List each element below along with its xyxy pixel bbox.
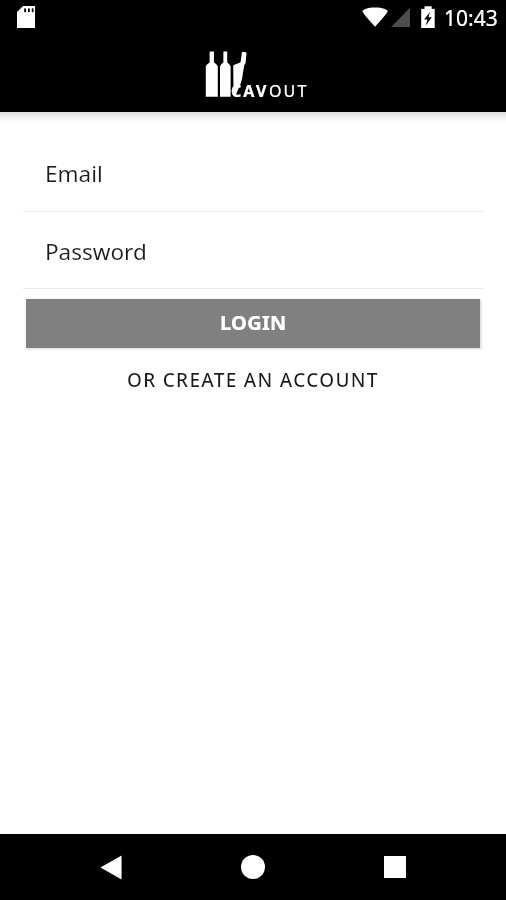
button[interactable]: Recent apps [364,836,426,898]
staticText: OUT [269,80,309,102]
staticText: 10:43 [444,4,498,33]
staticText: CAV [231,80,269,102]
staticText: Email [45,158,103,189]
button[interactable]: Back [80,836,142,898]
button[interactable]: OR CREATE AN ACCOUNT [23,363,483,397]
button[interactable]: LOGIN [26,299,480,348]
staticText: LOGIN [220,309,287,336]
staticText: OR CREATE AN ACCOUNT [127,367,379,393]
staticText: Password [45,236,147,267]
button[interactable]: Home [222,836,284,898]
